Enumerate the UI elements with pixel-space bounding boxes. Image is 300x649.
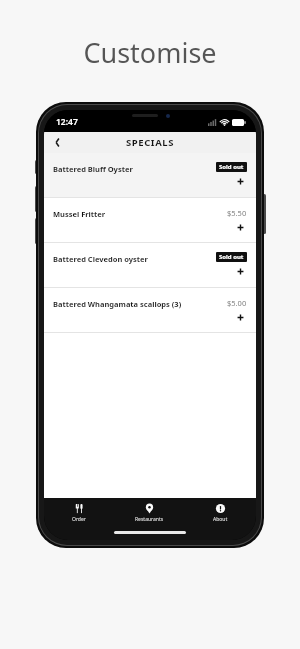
button[interactable]: Battered Bluff Oyster	[44, 153, 256, 197]
staticText: Battered Clevedon oyster	[53, 254, 148, 264]
staticText: $5.50	[227, 208, 247, 218]
staticText: Order	[72, 516, 86, 523]
staticText: 12:47	[56, 116, 78, 128]
button[interactable]: Battered Clevedon oyster	[44, 243, 256, 287]
button[interactable]: Add Battered Bluff Oyster	[234, 175, 247, 188]
staticText: Sold out	[219, 253, 244, 261]
button[interactable]: Restaurants	[114, 498, 185, 528]
staticText: Customise	[0, 34, 300, 71]
button[interactable]: Battered Whangamata scallops (3)	[44, 288, 256, 332]
staticText: Sold out	[219, 163, 244, 171]
staticText: About	[213, 516, 228, 523]
staticText: Battered Whangamata scallops (3)	[53, 299, 182, 309]
button[interactable]: Back	[44, 132, 70, 153]
button[interactable]: Order	[44, 498, 114, 528]
button[interactable]: Add Battered Whangamata scallops (3)	[234, 311, 247, 324]
button[interactable]: Add Mussel Fritter	[234, 221, 247, 234]
staticText: SPECIALS	[44, 136, 256, 149]
staticText: $5.00	[227, 298, 247, 308]
staticText: Mussel Fritter	[53, 209, 106, 219]
button[interactable]: Add Battered Clevedon oyster	[234, 265, 247, 278]
button[interactable]: About	[185, 498, 256, 528]
staticText: Restaurants	[135, 516, 164, 523]
button[interactable]: Mussel Fritter	[44, 198, 256, 242]
staticText: Battered Bluff Oyster	[53, 164, 133, 174]
